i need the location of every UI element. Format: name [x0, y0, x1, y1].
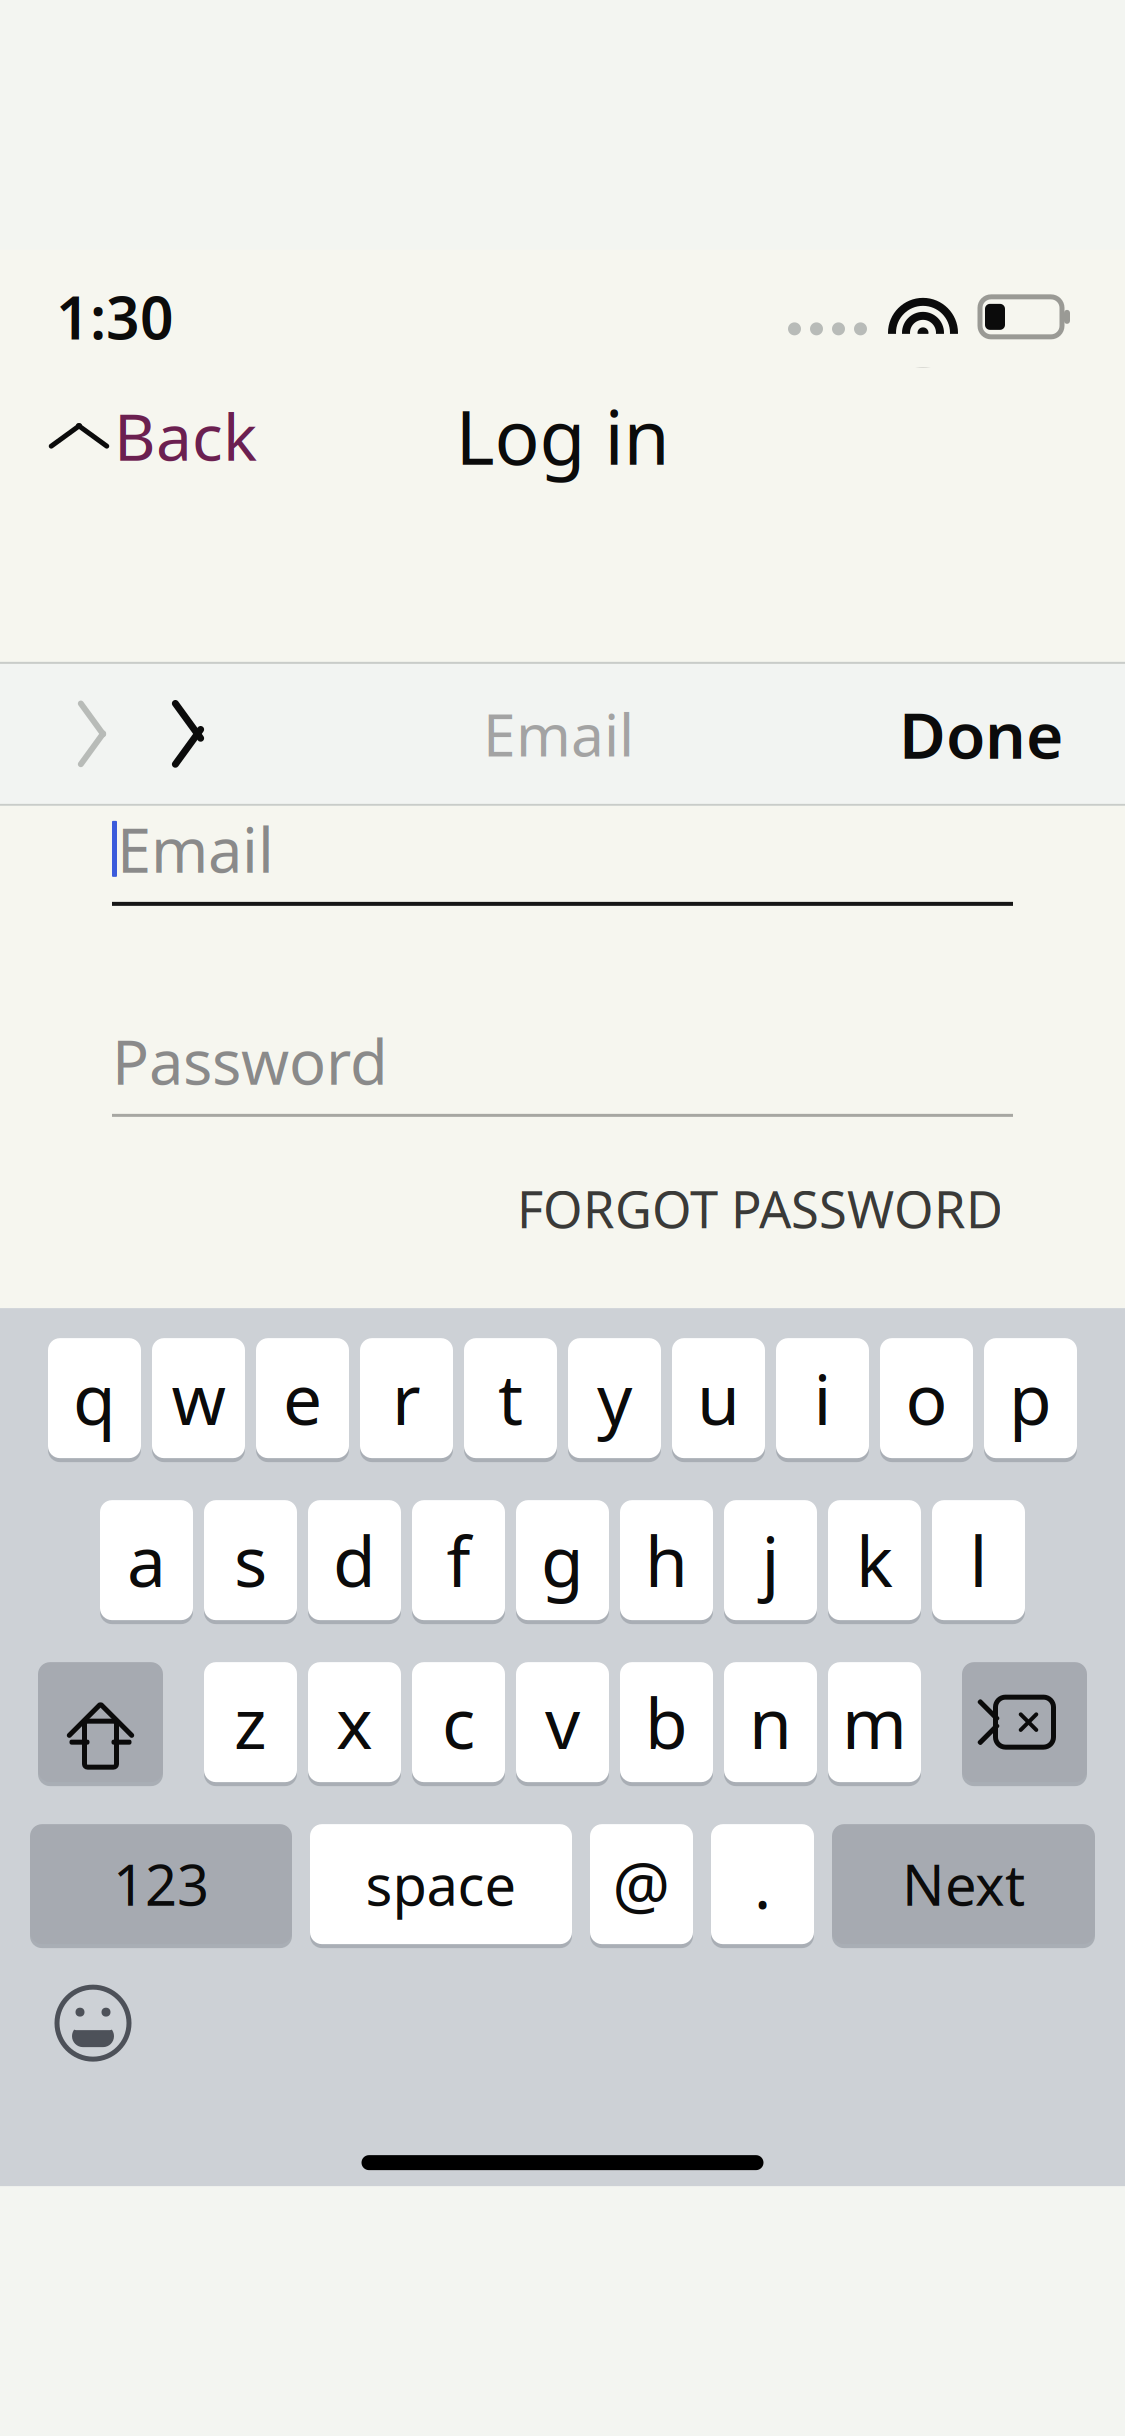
staticText: Email	[483, 695, 634, 773]
staticText: w	[171, 1352, 225, 1444]
button[interactable]: f	[412, 1500, 505, 1620]
staticText: c	[442, 1676, 475, 1768]
button[interactable]: b	[620, 1662, 713, 1782]
staticText: .	[754, 1842, 771, 1927]
button[interactable]: c	[412, 1662, 505, 1782]
staticText: q	[73, 1352, 116, 1444]
staticText: v	[545, 1676, 580, 1768]
button[interactable]: Delete	[962, 1662, 1087, 1782]
staticText: d	[333, 1514, 376, 1606]
button[interactable]: h	[620, 1500, 713, 1620]
button[interactable]: d	[308, 1500, 401, 1620]
button[interactable]: Shift	[38, 1662, 163, 1782]
button[interactable]: n	[724, 1662, 817, 1782]
button[interactable]: e	[256, 1338, 349, 1458]
staticText: Next	[902, 1847, 1025, 1921]
button[interactable]: Emoji keyboard	[36, 1970, 150, 2076]
button[interactable]: w	[152, 1338, 245, 1458]
staticText: r	[392, 1352, 421, 1444]
staticText: 123	[113, 1847, 209, 1921]
staticText: o	[905, 1352, 947, 1444]
staticText: i	[813, 1352, 831, 1444]
staticText: FORGOT PASSWORD	[517, 1175, 1003, 1242]
staticText: @	[612, 1842, 670, 1927]
staticText: t	[498, 1352, 523, 1444]
button[interactable]: r	[360, 1338, 453, 1458]
staticText: a	[127, 1514, 166, 1606]
button[interactable]: Back	[42, 381, 267, 490]
button[interactable]: u	[672, 1338, 765, 1458]
button[interactable]: k	[828, 1500, 921, 1620]
button[interactable]: z	[204, 1662, 297, 1782]
staticText: l	[969, 1514, 987, 1606]
button[interactable]: Previous field	[44, 686, 140, 782]
button[interactable]: Next	[832, 1824, 1095, 1944]
staticText: Back	[114, 393, 257, 478]
staticText: z	[234, 1676, 267, 1768]
button[interactable]: p	[984, 1338, 1077, 1458]
staticText: y	[597, 1352, 632, 1444]
staticText: u	[697, 1352, 740, 1444]
staticText: g	[541, 1514, 584, 1606]
button[interactable]: s	[204, 1500, 297, 1620]
button[interactable]: Space	[310, 1824, 572, 1944]
staticText: n	[749, 1676, 792, 1768]
staticText: space	[365, 1847, 516, 1921]
staticText: 1:30	[56, 278, 174, 356]
staticText: e	[283, 1352, 322, 1444]
button[interactable]: i	[776, 1338, 869, 1458]
button[interactable]: m	[828, 1662, 921, 1782]
button[interactable]: g	[516, 1500, 609, 1620]
button[interactable]: o	[880, 1338, 973, 1458]
staticText: Log in	[455, 386, 669, 485]
staticText: k	[856, 1514, 893, 1606]
button[interactable]: l	[932, 1500, 1025, 1620]
staticText: Password	[112, 1020, 388, 1101]
staticText: j	[761, 1514, 779, 1606]
staticText: m	[842, 1676, 907, 1768]
button[interactable]: t	[464, 1338, 557, 1458]
button[interactable]: Next field	[140, 686, 236, 782]
button[interactable]: q	[48, 1338, 141, 1458]
staticText: f	[446, 1514, 470, 1606]
button[interactable]: FORGOT PASSWORD	[507, 1163, 1013, 1254]
button[interactable]: y	[568, 1338, 661, 1458]
staticText: h	[645, 1514, 688, 1606]
staticText: b	[645, 1676, 688, 1768]
button[interactable]: a	[100, 1500, 193, 1620]
button[interactable]: Done	[881, 677, 1081, 790]
staticText: Email	[117, 808, 274, 889]
staticText: Done	[899, 691, 1063, 776]
button[interactable]: Numbers and symbols	[30, 1824, 292, 1944]
staticText: x	[336, 1676, 373, 1768]
staticText: p	[1009, 1352, 1052, 1444]
button[interactable]: j	[724, 1500, 817, 1620]
button[interactable]: v	[516, 1662, 609, 1782]
button[interactable]: At sign	[590, 1824, 693, 1944]
staticText: s	[234, 1514, 267, 1606]
button[interactable]: Period	[711, 1824, 814, 1944]
button[interactable]: x	[308, 1662, 401, 1782]
